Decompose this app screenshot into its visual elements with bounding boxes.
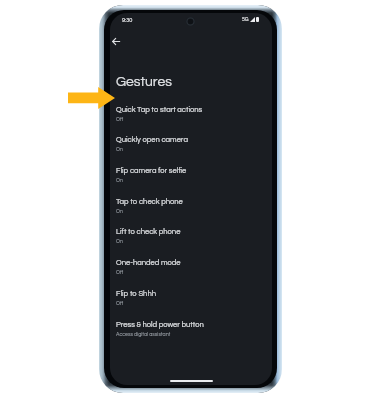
staticText: One-handed mode [116,259,181,267]
staticText: Press & hold power button [116,321,204,329]
button[interactable]: Back [110,29,128,53]
button[interactable]: Lift to check phone [110,228,272,244]
staticText: Flip to Shhh [116,290,156,298]
staticText: On [116,178,123,183]
staticText: Off [116,117,124,122]
staticText: On [116,147,123,152]
staticText: Tap to check phone [116,198,183,206]
staticText: Gestures [116,75,172,89]
staticText: Off [116,270,124,275]
button[interactable]: Tap to check phone [110,198,272,214]
staticText: On [116,239,123,244]
button[interactable]: Quickly open camera [110,136,272,152]
button[interactable]: Flip to Shhh [110,290,272,306]
staticText: 5G [242,17,249,22]
staticText: Flip camera for selfie [116,167,187,175]
button[interactable]: Flip camera for selfie [110,167,272,183]
staticText: Access digital assistant [116,332,171,337]
staticText: Quickly open camera [116,136,188,144]
staticText: 9:30 [122,17,133,23]
button[interactable]: Press & hold power button [110,321,272,337]
staticText: Off [116,301,124,306]
staticText: On [116,209,123,214]
button[interactable]: One-handed mode [110,259,272,275]
button[interactable]: Quick Tap to start actions [110,106,272,122]
staticText: Lift to check phone [116,228,181,236]
staticText: Quick Tap to start actions [116,106,203,114]
